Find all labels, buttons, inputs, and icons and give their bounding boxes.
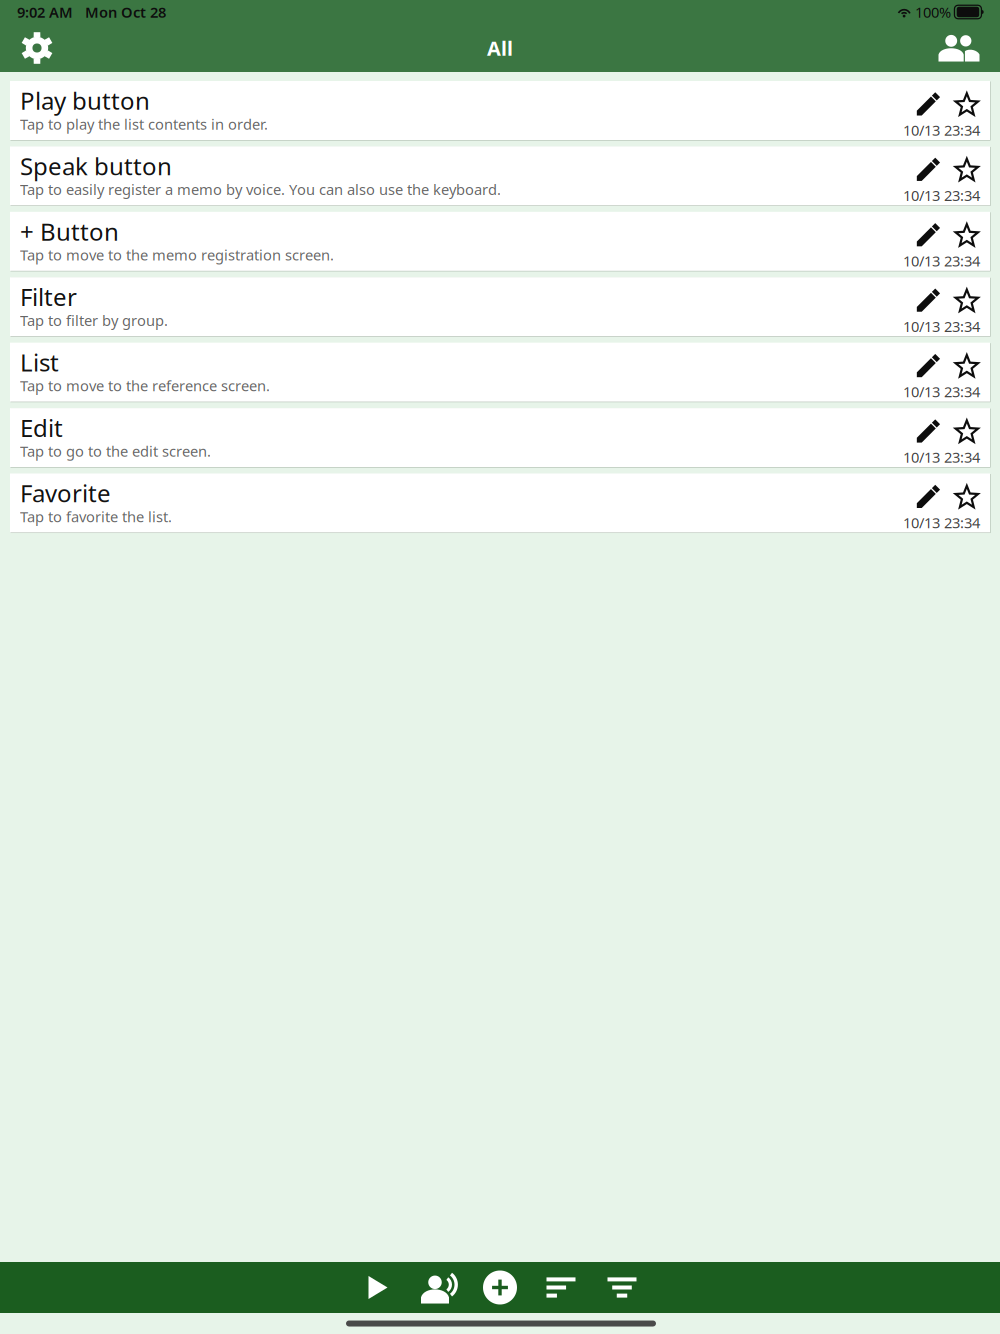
button[interactable]: Favorite Filter bbox=[956, 290, 978, 311]
button[interactable]: Groups bbox=[931, 24, 987, 72]
staticText: 10/13 23:34 bbox=[903, 186, 980, 205]
button[interactable]: List bbox=[10, 343, 990, 402]
button[interactable]: Favorite List bbox=[956, 355, 978, 376]
button[interactable]: Edit List bbox=[917, 354, 940, 377]
button[interactable]: + Button bbox=[10, 212, 990, 271]
staticText: Mon Oct 28 bbox=[73, 2, 166, 22]
button[interactable]: Filter bbox=[591, 1262, 652, 1313]
staticText: Edit bbox=[20, 412, 63, 444]
button[interactable]: Edit Filter bbox=[917, 289, 940, 312]
button[interactable]: Play bbox=[347, 1262, 408, 1313]
staticText: 10/13 23:34 bbox=[903, 251, 980, 271]
button[interactable]: Filter bbox=[10, 277, 990, 336]
button[interactable]: Add bbox=[469, 1262, 530, 1313]
button[interactable]: Edit Favorite bbox=[917, 485, 940, 508]
staticText: All bbox=[487, 35, 513, 61]
staticText: Tap to filter by group. bbox=[20, 310, 168, 330]
staticText: Favorite bbox=[20, 477, 111, 509]
button[interactable]: Edit Speak button bbox=[917, 158, 940, 181]
staticText: Filter bbox=[20, 281, 77, 313]
button[interactable]: Edit + Button bbox=[917, 223, 940, 246]
button[interactable]: Edit bbox=[10, 408, 990, 467]
button[interactable]: Play button bbox=[10, 81, 990, 140]
button[interactable]: Favorite Play button bbox=[956, 93, 978, 115]
staticText: 10/13 23:34 bbox=[903, 382, 980, 401]
staticText: Tap to move to the memo registration scr… bbox=[20, 245, 334, 265]
button[interactable]: Favorite + Button bbox=[956, 224, 978, 245]
button[interactable]: Favorite Favorite bbox=[956, 486, 978, 507]
button[interactable]: Favorite bbox=[10, 473, 990, 532]
button[interactable]: Settings bbox=[9, 24, 65, 72]
staticText: 100% bbox=[911, 2, 955, 22]
staticText: Tap to go to the edit screen. bbox=[20, 441, 211, 461]
button[interactable]: Favorite Edit bbox=[956, 420, 978, 442]
button[interactable]: Speak bbox=[408, 1262, 469, 1313]
staticText: 10/13 23:34 bbox=[903, 316, 980, 336]
staticText: + Button bbox=[20, 215, 119, 247]
button[interactable]: Edit Play button bbox=[917, 92, 940, 115]
button[interactable]: Edit Edit bbox=[917, 420, 940, 443]
staticText: Tap to play the list contents in order. bbox=[20, 114, 268, 134]
button[interactable]: List bbox=[530, 1262, 591, 1313]
staticText: Tap to favorite the list. bbox=[20, 507, 172, 526]
staticText: List bbox=[20, 346, 59, 378]
staticText: 9:02 AM bbox=[17, 2, 73, 22]
staticText: Tap to move to the reference screen. bbox=[20, 376, 270, 395]
button[interactable]: Speak button bbox=[10, 146, 990, 205]
button[interactable]: Favorite Speak button bbox=[956, 159, 978, 180]
staticText: Play button bbox=[20, 85, 150, 116]
staticText: 10/13 23:34 bbox=[903, 120, 980, 140]
staticText: Speak button bbox=[20, 150, 172, 182]
staticText: Tap to easily register a memo by voice. … bbox=[20, 180, 501, 199]
staticText: 10/13 23:34 bbox=[903, 447, 980, 467]
staticText: 10/13 23:34 bbox=[903, 513, 980, 532]
